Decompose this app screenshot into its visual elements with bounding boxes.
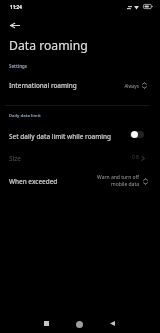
button[interactable] xyxy=(0,128,160,147)
staticText: Set daily data limit while roaming xyxy=(9,132,111,141)
staticText: Warn and turn off mobile data xyxy=(0,174,139,188)
button[interactable] xyxy=(0,172,160,194)
staticText: When exceeded xyxy=(9,177,58,186)
staticText: Settings xyxy=(9,63,27,69)
staticText: 0 B xyxy=(0,154,139,160)
staticText: Always xyxy=(0,83,139,89)
button[interactable]: Back xyxy=(5,15,25,35)
button[interactable] xyxy=(0,78,160,98)
button[interactable]: Recents xyxy=(36,313,57,333)
staticText: 11:24 xyxy=(10,4,22,10)
button[interactable]: Set daily data limit while roaming toggl… xyxy=(130,131,144,138)
staticText: International roaming xyxy=(9,81,77,90)
button[interactable]: Back xyxy=(102,313,123,333)
staticText: Size xyxy=(9,154,21,163)
staticText: Daily data limit xyxy=(9,113,41,119)
staticText: Data roaming xyxy=(9,37,88,54)
button[interactable]: Home xyxy=(69,314,90,333)
button[interactable] xyxy=(0,150,160,169)
